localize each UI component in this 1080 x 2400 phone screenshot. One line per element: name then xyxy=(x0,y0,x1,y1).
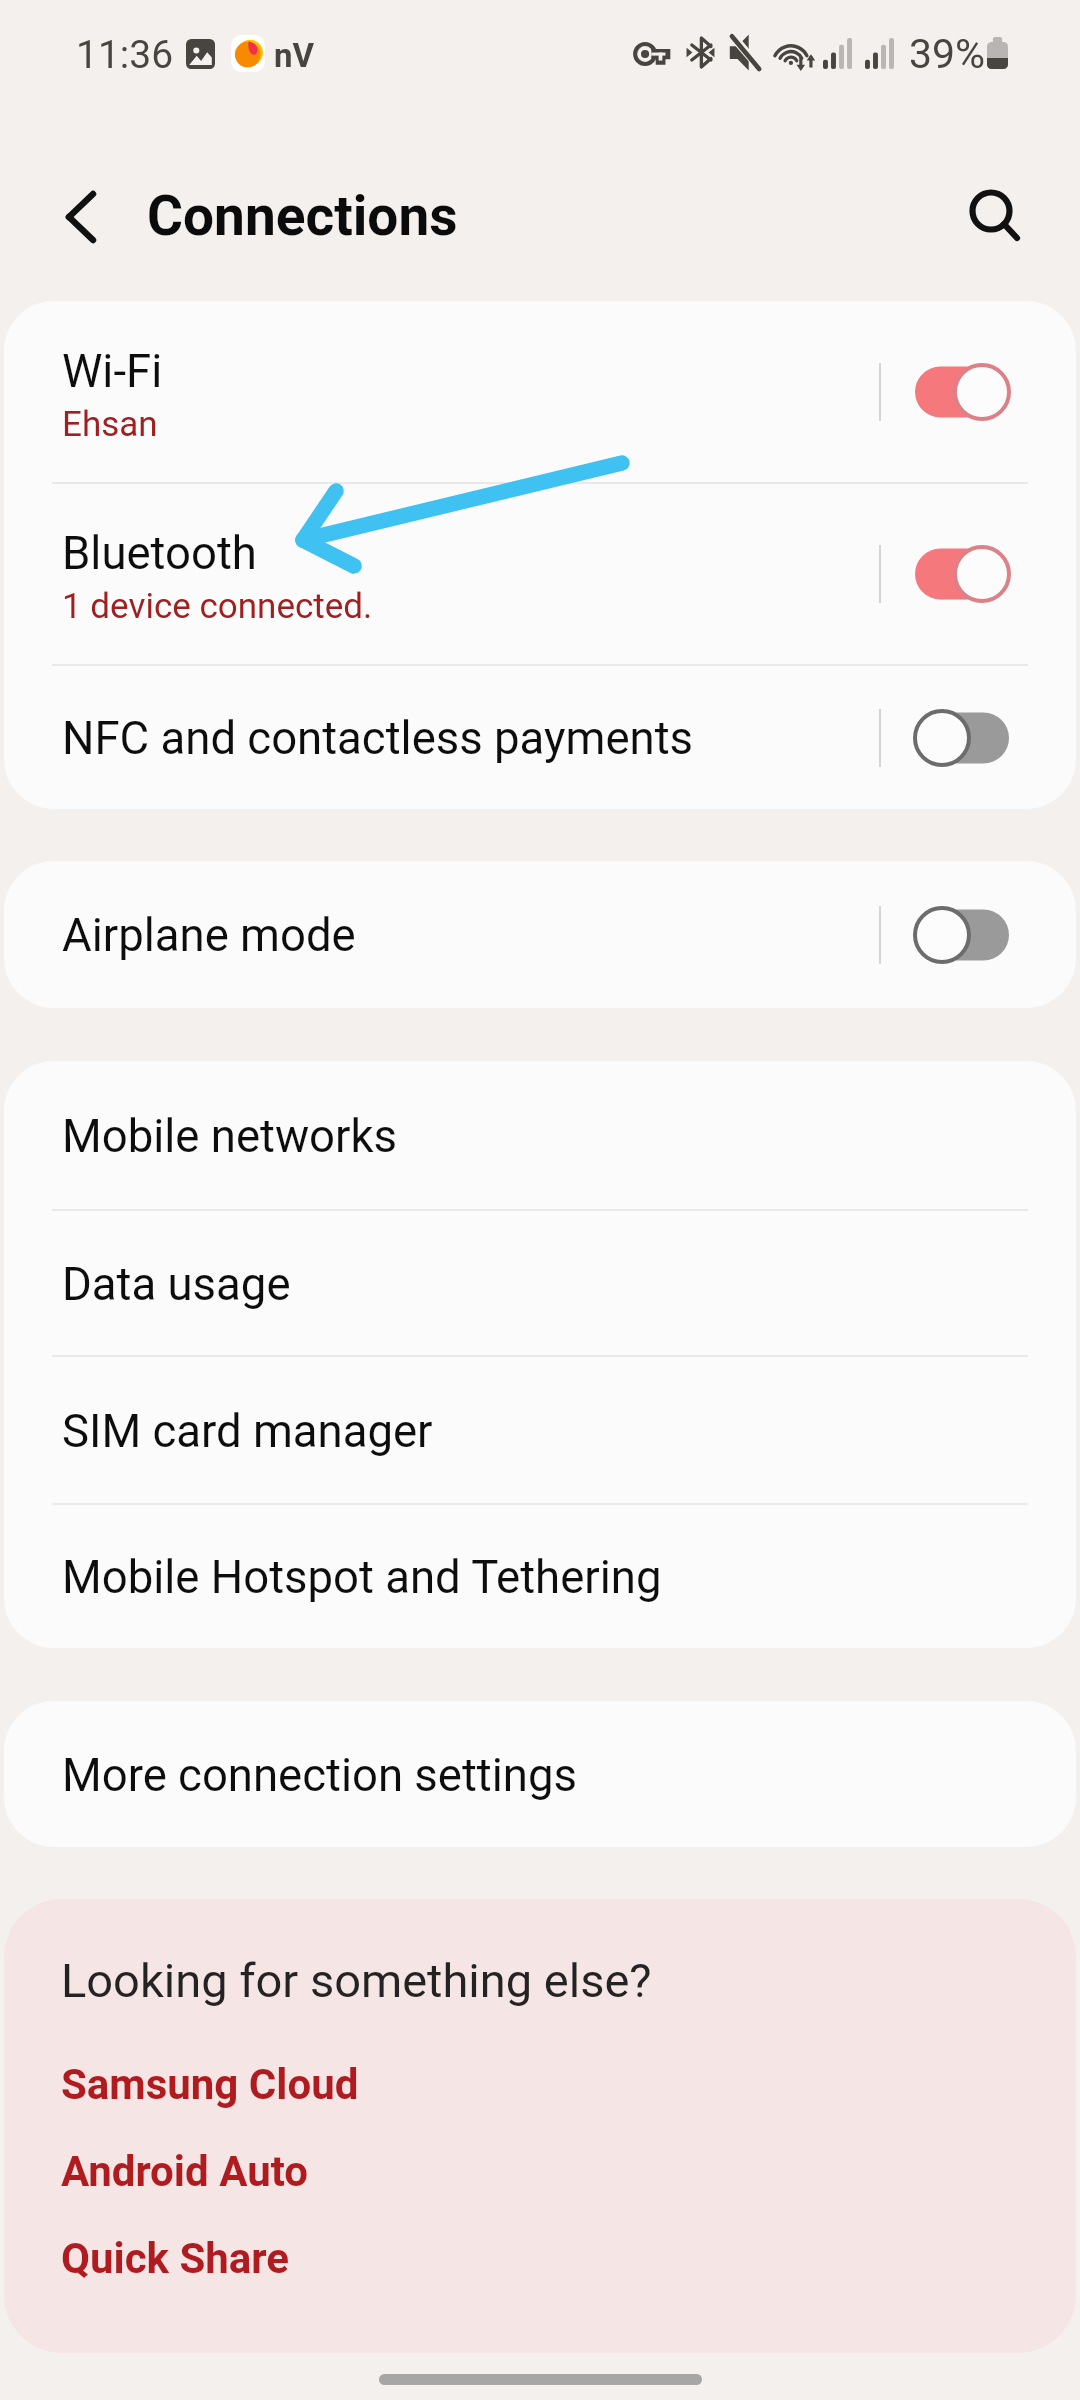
button[interactable]: NFC and contactless payments xyxy=(4,666,1076,809)
button[interactable]: Switch off xyxy=(956,690,1076,786)
button[interactable]: Search xyxy=(944,163,1040,259)
button[interactable]: Mobile networks xyxy=(4,1061,1076,1209)
button[interactable]: Switch off xyxy=(956,887,1076,983)
staticText: More connection settings xyxy=(62,1749,577,1802)
button[interactable]: Quick Share xyxy=(61,2234,289,2283)
staticText: Mobile networks xyxy=(62,1110,398,1163)
staticText: nV xyxy=(274,36,315,75)
staticText: 1 device connected. xyxy=(62,586,373,627)
staticText: Wi-Fi xyxy=(62,345,163,398)
staticText: Bluetooth xyxy=(62,527,257,580)
button[interactable]: Bluetooth xyxy=(4,484,1076,664)
staticText: Airplane mode xyxy=(62,909,356,962)
button[interactable]: Data usage xyxy=(4,1211,1076,1355)
staticText: Mobile Hotspot and Tethering xyxy=(62,1551,662,1604)
staticText: NFC and contactless payments xyxy=(62,712,694,765)
staticText: Data usage xyxy=(62,1258,291,1311)
button[interactable]: Switch on xyxy=(956,526,1076,622)
button[interactable]: Airplane mode xyxy=(4,861,1076,1008)
staticText: Connections xyxy=(147,184,458,248)
button[interactable]: Android Auto xyxy=(61,2147,309,2196)
button[interactable]: Samsung Cloud xyxy=(61,2060,359,2109)
staticText: 39% xyxy=(909,30,986,78)
staticText: 11:36 xyxy=(76,32,174,78)
staticText: Ehsan xyxy=(62,404,158,445)
staticText: SIM card manager xyxy=(62,1405,433,1458)
button[interactable]: Switch on xyxy=(956,344,1076,440)
button[interactable]: More connection settings xyxy=(4,1701,1076,1847)
staticText: Looking for something else? xyxy=(61,1953,652,2008)
button[interactable]: Back xyxy=(33,163,129,259)
button[interactable]: Wi-Fi xyxy=(4,301,1076,482)
button[interactable]: Mobile Hotspot and Tethering xyxy=(4,1505,1076,1648)
button[interactable]: SIM card manager xyxy=(4,1357,1076,1503)
